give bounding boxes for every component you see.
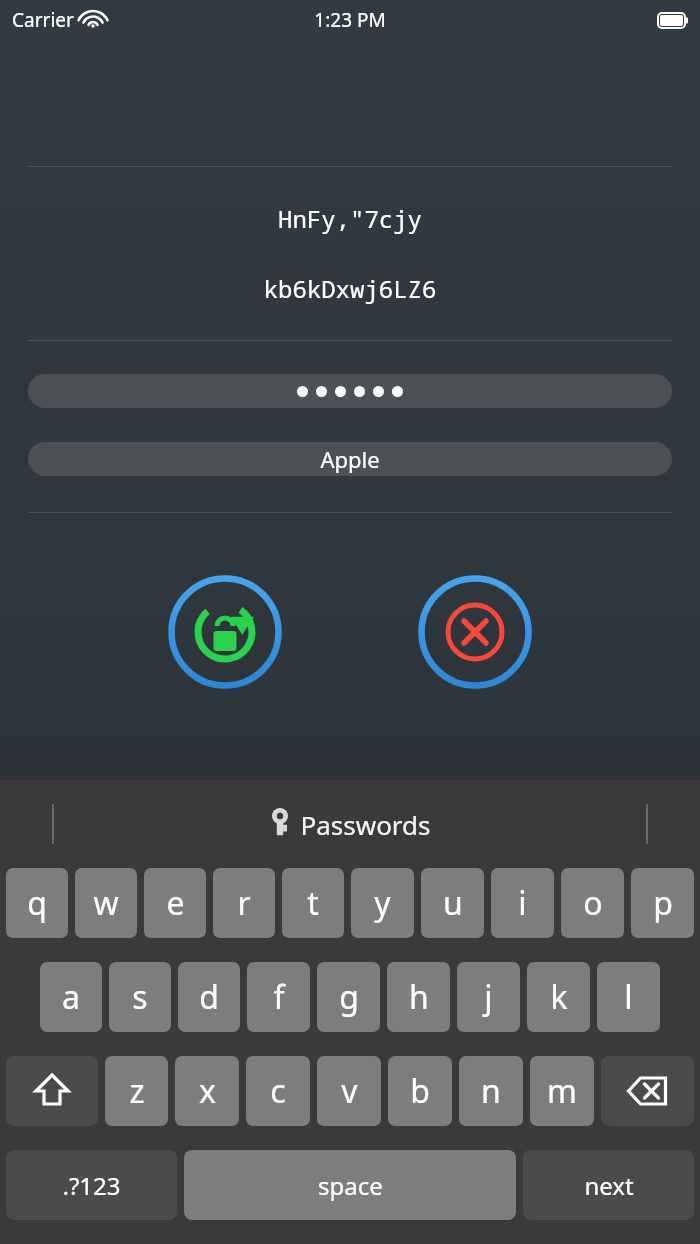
staticText: u bbox=[443, 881, 463, 925]
staticText: p bbox=[653, 881, 673, 925]
button[interactable]: .?123 bbox=[6, 1150, 177, 1220]
staticText: s bbox=[132, 975, 148, 1019]
staticText: x bbox=[199, 1069, 216, 1113]
staticText: Apple bbox=[320, 444, 380, 474]
button[interactable]: o bbox=[561, 868, 624, 938]
button[interactable]: space bbox=[184, 1150, 516, 1220]
staticText: g bbox=[339, 975, 359, 1019]
button[interactable]: h bbox=[387, 962, 450, 1032]
staticText: .?123 bbox=[62, 1169, 121, 1202]
button[interactable]: f bbox=[247, 962, 310, 1032]
staticText: q bbox=[27, 881, 47, 925]
staticText: k bbox=[550, 975, 568, 1019]
button[interactable]: y bbox=[351, 868, 414, 938]
staticText: r bbox=[237, 881, 251, 925]
staticText: l bbox=[624, 975, 633, 1019]
button[interactable]: z bbox=[105, 1056, 168, 1126]
staticText: b bbox=[410, 1069, 430, 1113]
button[interactable]: s bbox=[109, 962, 171, 1032]
staticText: j bbox=[484, 975, 493, 1019]
button[interactable]: x bbox=[175, 1056, 239, 1126]
staticText: t bbox=[307, 881, 319, 925]
button[interactable]: d bbox=[178, 962, 240, 1032]
staticText: z bbox=[129, 1069, 145, 1113]
button[interactable]: r bbox=[213, 868, 275, 938]
staticText: m bbox=[547, 1069, 577, 1113]
button[interactable]: i bbox=[491, 868, 554, 938]
staticText: v bbox=[341, 1069, 358, 1113]
staticText: n bbox=[481, 1069, 501, 1113]
button[interactable]: Backspace bbox=[601, 1056, 694, 1126]
button[interactable]: g bbox=[317, 962, 380, 1032]
staticText: e bbox=[166, 881, 185, 925]
button[interactable]: j bbox=[457, 962, 520, 1032]
staticText: h bbox=[409, 975, 429, 1019]
staticText: d bbox=[199, 975, 219, 1019]
button[interactable]: w bbox=[75, 868, 137, 938]
button[interactable]: Generate password bbox=[168, 575, 282, 689]
staticText: i bbox=[518, 881, 527, 925]
staticText: c bbox=[270, 1069, 286, 1113]
button[interactable]: next bbox=[523, 1150, 694, 1220]
staticText: 1:23 PM bbox=[314, 7, 386, 33]
button[interactable]: l bbox=[597, 962, 660, 1032]
button[interactable]: m bbox=[530, 1056, 594, 1126]
button[interactable]: t bbox=[282, 868, 344, 938]
staticText: space bbox=[318, 1169, 383, 1202]
button[interactable]: k bbox=[527, 962, 590, 1032]
staticText: y bbox=[374, 881, 391, 925]
button[interactable]: Shift bbox=[6, 1056, 98, 1126]
staticText: next bbox=[584, 1169, 634, 1202]
staticText: kb6kDxwj6LZ6 bbox=[0, 272, 700, 305]
button[interactable]: q bbox=[6, 868, 68, 938]
button[interactable]: b bbox=[388, 1056, 452, 1126]
staticText: w bbox=[93, 881, 119, 925]
button[interactable]: e bbox=[144, 868, 206, 938]
button[interactable]: Cancel bbox=[418, 575, 532, 689]
button[interactable]: Passwords bbox=[269, 804, 431, 844]
button[interactable]: u bbox=[421, 868, 484, 938]
staticText: Carrier bbox=[12, 7, 74, 33]
button[interactable] bbox=[28, 374, 672, 408]
button[interactable]: Apple bbox=[28, 442, 672, 476]
button[interactable]: a bbox=[40, 962, 102, 1032]
staticText: o bbox=[583, 881, 603, 925]
button[interactable]: v bbox=[317, 1056, 381, 1126]
button[interactable]: c bbox=[246, 1056, 310, 1126]
button[interactable]: n bbox=[459, 1056, 523, 1126]
staticText: Passwords bbox=[300, 807, 431, 842]
staticText: a bbox=[62, 975, 80, 1019]
staticText: f bbox=[273, 975, 285, 1019]
button[interactable]: p bbox=[631, 868, 694, 938]
staticText: HnFy,"7cjy bbox=[0, 202, 700, 235]
